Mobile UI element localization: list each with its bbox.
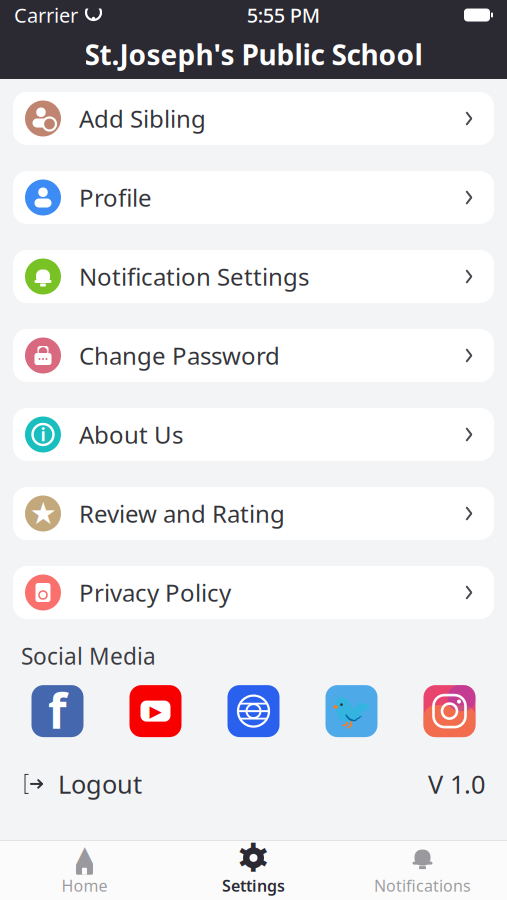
staticText: i — [40, 423, 45, 446]
button[interactable]: Instagram — [423, 685, 475, 737]
staticText: Add Sibling — [79, 103, 206, 134]
button[interactable]: Change Password — [0, 329, 507, 382]
staticText: Notifications — [374, 875, 471, 896]
button[interactable]: Website — [227, 685, 279, 737]
staticText: ★ — [29, 496, 56, 531]
staticText: Privacy Policy — [79, 577, 231, 608]
staticText: Carrier — [14, 2, 78, 28]
button[interactable]: Notifications — [338, 841, 507, 900]
staticText: Notification Settings — [79, 261, 309, 292]
button[interactable]: Notification Settings — [0, 250, 507, 303]
button[interactable]: Add Sibling — [0, 92, 507, 145]
staticText: 5:55 PM — [247, 2, 320, 28]
staticText: Settings — [222, 875, 285, 896]
staticText: Logout — [58, 767, 142, 801]
staticText: f — [48, 678, 67, 742]
staticText: V 1.0 — [428, 767, 485, 801]
button[interactable]: Profile — [0, 171, 507, 224]
staticText: Review and Rating — [79, 498, 285, 529]
button[interactable]: ★ — [0, 487, 507, 540]
staticText: Profile — [79, 182, 152, 213]
staticText: 🐦 — [330, 691, 373, 731]
button[interactable]: Privacy Policy — [0, 566, 507, 619]
staticText: St.Joseph's Public School — [84, 36, 422, 73]
staticText: Social Media — [21, 641, 156, 671]
button[interactable]: ✲ — [169, 841, 338, 900]
staticText: ▲ — [76, 841, 93, 867]
staticText: ✲ — [236, 835, 270, 881]
button[interactable]: Facebook — [31, 685, 83, 737]
button[interactable]: YouTube — [129, 685, 181, 737]
staticText: Change Password — [79, 340, 280, 371]
button[interactable]: ▲ — [0, 841, 169, 900]
button[interactable]: i — [0, 408, 507, 461]
staticText: ▶ — [149, 702, 161, 720]
staticText: Home — [61, 875, 107, 896]
button[interactable]: Twitter — [325, 685, 377, 737]
button[interactable]: Logout — [22, 761, 142, 807]
staticText: About Us — [79, 419, 183, 450]
